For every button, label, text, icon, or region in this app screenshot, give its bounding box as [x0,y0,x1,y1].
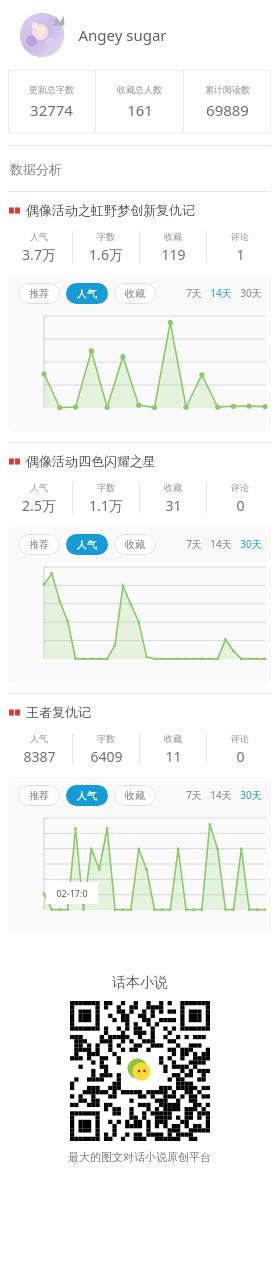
staticText: 31 [165,496,182,515]
staticText: 人气 [77,287,97,300]
button[interactable]: 7天 [185,784,203,806]
button[interactable]: 收藏总人数 [96,70,183,133]
button[interactable]: 收藏 [114,534,156,555]
staticText: 推荐 [29,538,49,551]
staticText: 30天 [240,286,262,300]
button[interactable]: 收藏 [140,227,206,267]
button[interactable]: 人气 [6,729,72,769]
button[interactable]: 字数 [73,478,139,518]
button[interactable]: 30天 [239,282,263,304]
staticText: 评论 [231,482,249,493]
staticText: 收藏 [125,789,145,802]
staticText: 收藏 [125,287,145,300]
staticText: 收藏 [164,482,182,493]
button[interactable]: 评论 [207,478,273,518]
staticText: 14天 [210,537,232,551]
staticText: 推荐 [29,287,49,300]
staticText: 累计阅读数 [205,84,250,95]
button[interactable]: 14天 [209,533,233,555]
button[interactable]: 推荐 [18,534,60,555]
button[interactable]: 14天 [209,784,233,806]
staticText: 1.1万 [89,496,123,515]
staticText: 7天 [186,788,202,802]
button[interactable]: 偶像活动之虹野梦创新复仇记 [0,202,279,218]
button[interactable]: 累计阅读数 [184,70,271,133]
staticText: 收藏总人数 [117,84,162,95]
staticText: 1 [236,245,245,264]
staticText: 人气 [77,789,97,802]
button[interactable]: 推荐 [18,283,60,304]
button[interactable]: 人气 [66,785,108,806]
staticText: 3.7万 [22,245,56,264]
button[interactable]: 7天 [185,533,203,555]
staticText: 11 [165,747,182,766]
button[interactable]: 更新总字数 [8,70,95,133]
staticText: 人气 [30,733,48,744]
button[interactable]: 字数 [73,729,139,769]
staticText: 收藏 [164,231,182,242]
button[interactable]: 收藏 [140,478,206,518]
staticText: 69889 [206,100,249,120]
staticText: 14天 [210,286,232,300]
staticText: 119 [161,245,186,264]
staticText: 更新总字数 [29,84,74,95]
button[interactable]: 收藏 [114,283,156,304]
staticText: 话本小说 [112,974,168,992]
button[interactable]: 收藏 [114,785,156,806]
button[interactable]: 收藏 [140,729,206,769]
button[interactable]: 偶像活动四色闪耀之星 [0,453,279,469]
staticText: 人气 [30,231,48,242]
staticText: 字数 [97,231,115,242]
staticText: 32774 [30,100,73,120]
staticText: 推荐 [29,789,49,802]
staticText: 0 [236,747,245,766]
staticText: 7天 [186,286,202,300]
button[interactable]: 14天 [209,282,233,304]
button[interactable]: 人气 [66,283,108,304]
staticText: 161 [127,100,153,120]
button[interactable]: Angey sugar [0,0,279,70]
button[interactable]: 评论 [207,227,273,267]
staticText: 最大的图文对话小说原创平台 [68,1150,211,1164]
staticText: 6409 [90,747,123,766]
button[interactable]: 人气 [66,534,108,555]
staticText: 偶像活动之虹野梦创新复仇记 [26,202,195,218]
staticText: 人气 [30,482,48,493]
staticText: 收藏 [125,538,145,551]
staticText: 8387 [23,747,56,766]
staticText: 评论 [231,733,249,744]
staticText: 评论 [231,231,249,242]
staticText: 1.6万 [89,245,123,264]
staticText: 7天 [186,537,202,551]
staticText: 数据分析 [10,161,62,177]
staticText: 偶像活动四色闪耀之星 [26,453,156,469]
staticText: 字数 [97,733,115,744]
staticText: 0 [236,496,245,515]
staticText: 14天 [210,788,232,802]
button[interactable]: 30天 [239,784,263,806]
button[interactable]: 评论 [207,729,273,769]
staticText: 2.5万 [22,496,56,515]
staticText: 30天 [240,788,262,802]
button[interactable]: 推荐 [18,785,60,806]
button[interactable]: 王者复仇记 [0,704,279,720]
staticText: 王者复仇记 [26,704,91,720]
button[interactable]: 30天 [239,533,263,555]
staticText: 人气 [77,538,97,551]
button[interactable]: 人气 [6,227,72,267]
staticText: 收藏 [164,733,182,744]
staticText: 02-17:0 [56,887,88,899]
button[interactable]: 7天 [185,282,203,304]
button[interactable]: 字数 [73,227,139,267]
button[interactable]: 人气 [6,478,72,518]
staticText: 30天 [240,537,262,551]
staticText: 字数 [97,482,115,493]
staticText: Angey sugar [78,25,167,45]
